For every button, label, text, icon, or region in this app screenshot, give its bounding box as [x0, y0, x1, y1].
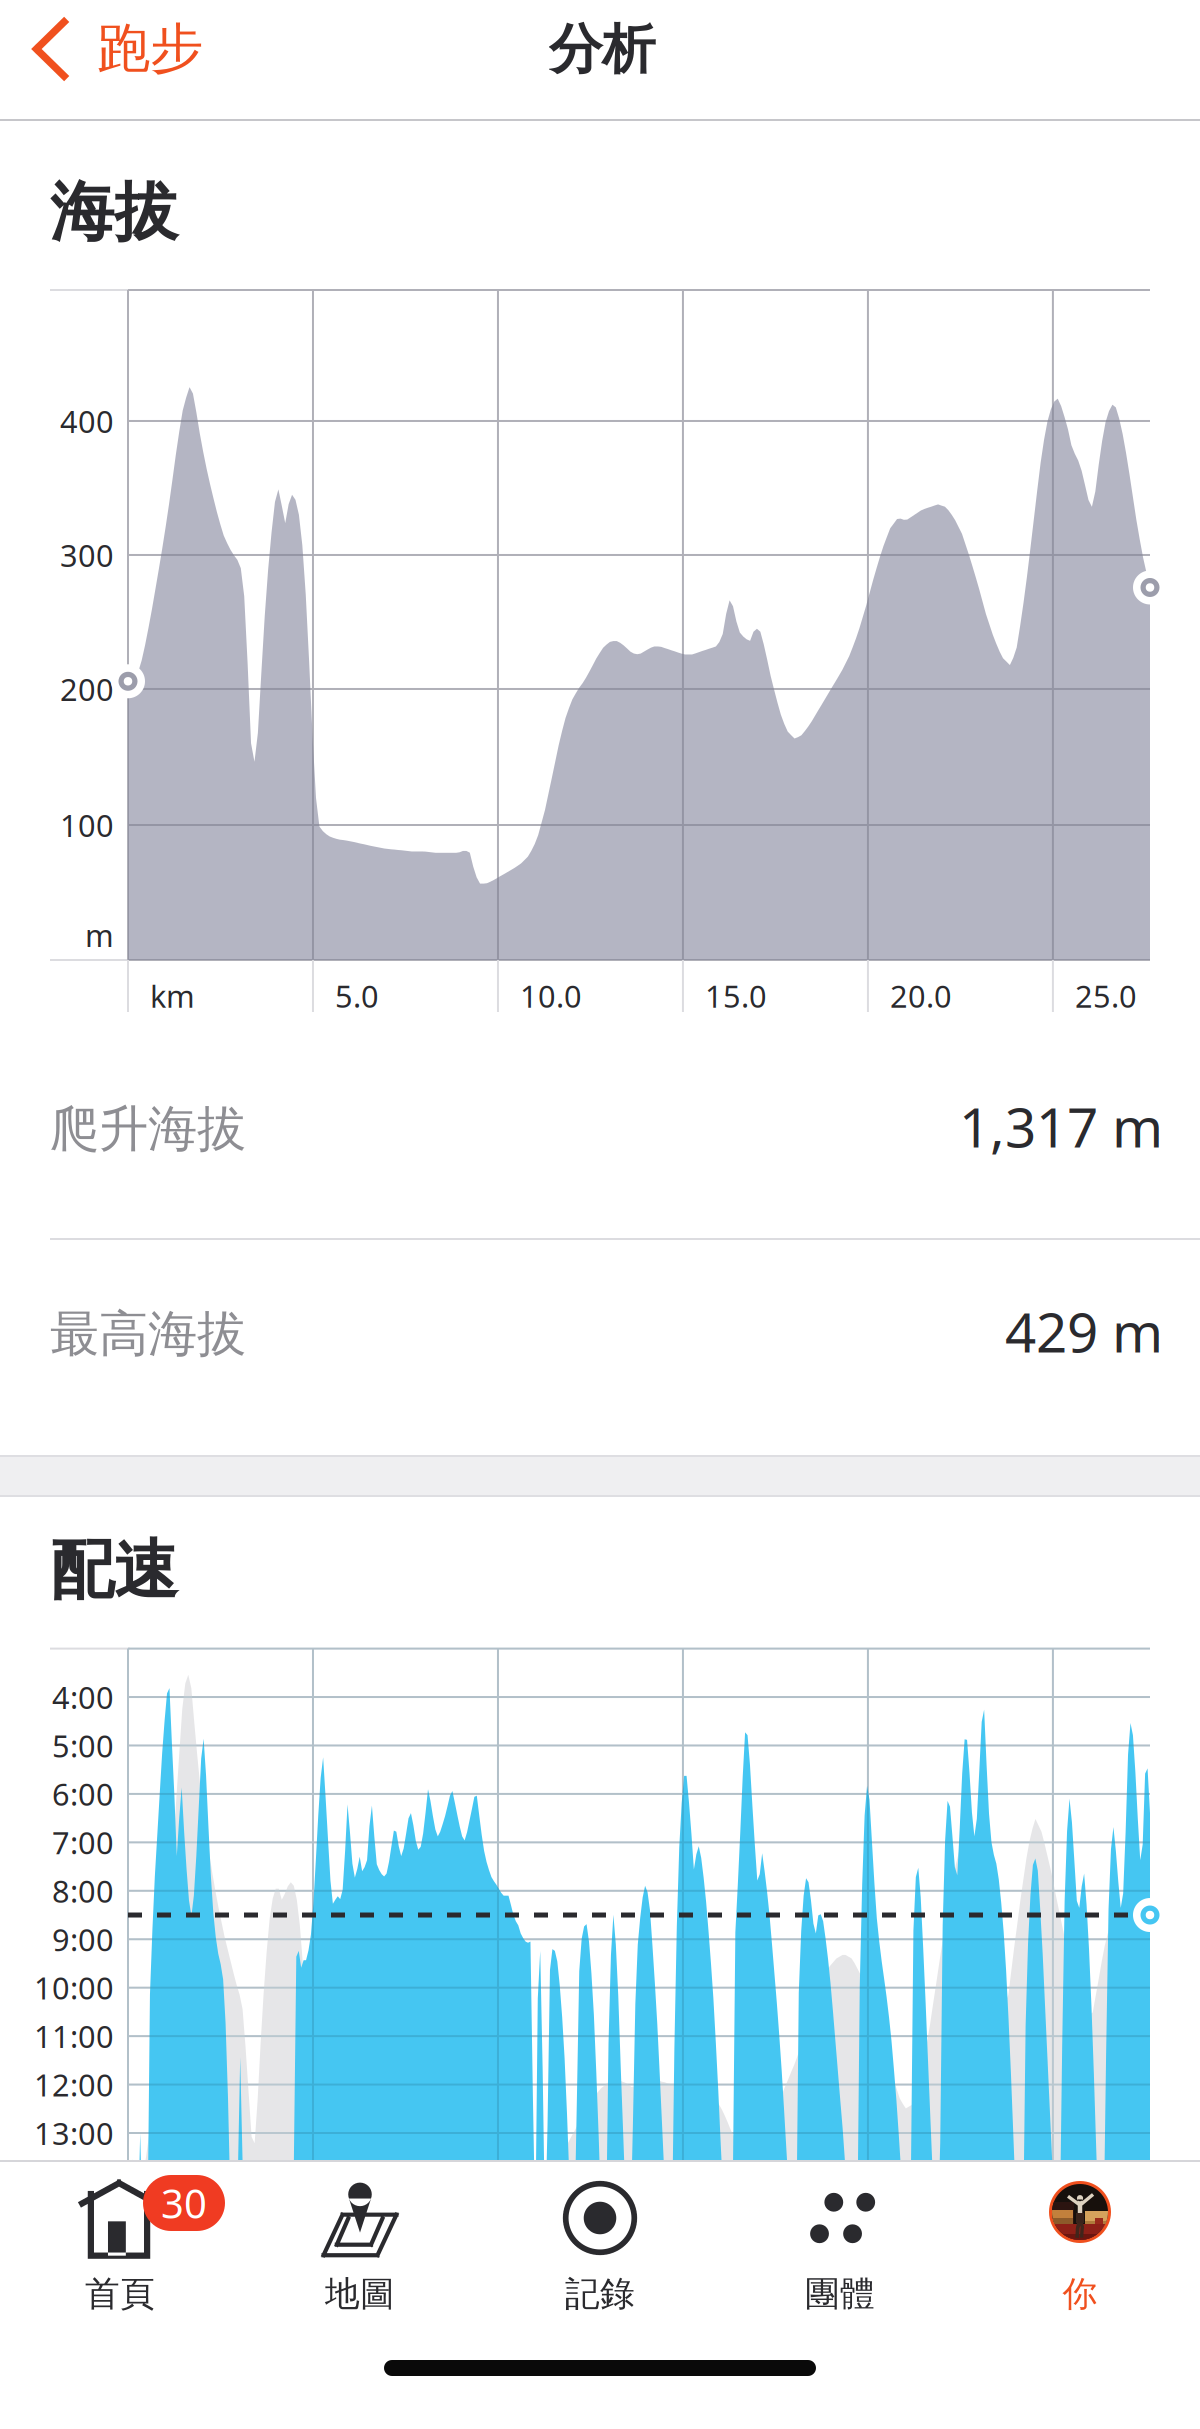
staticText: 30	[161, 2176, 207, 2230]
button[interactable]: 地圖	[240, 2175, 480, 2325]
staticText: 團體	[805, 2272, 875, 2316]
staticText: 5.0	[335, 975, 379, 1017]
staticText: 25.0	[1075, 975, 1137, 1017]
staticText: 分析	[549, 16, 655, 83]
staticText: 300	[60, 534, 114, 576]
button[interactable]: 團體	[720, 2175, 960, 2325]
staticText: 配速	[50, 1530, 178, 1611]
staticText: 11:00	[34, 2015, 114, 2057]
button[interactable]: 你	[960, 2175, 1200, 2325]
staticText: 爬升海拔	[50, 1098, 246, 1160]
staticText: 記錄	[565, 2272, 635, 2316]
staticText: 7:00	[52, 1821, 114, 1863]
staticText: 400	[60, 400, 114, 442]
staticText: 100	[60, 804, 114, 846]
staticText: 12:00	[34, 2064, 114, 2105]
staticText: 地圖	[325, 2272, 395, 2316]
staticText: 首頁	[85, 2272, 155, 2316]
staticText: 1,317 m	[959, 1089, 1163, 1163]
staticText: 海拔	[50, 172, 178, 253]
staticText: 6:00	[52, 1773, 114, 1815]
staticText: 4:00	[52, 1676, 114, 1718]
staticText: 5:00	[52, 1725, 114, 1766]
staticText: 20.0	[890, 975, 952, 1017]
staticText: 15.0	[705, 975, 767, 1017]
staticText: 13:00	[34, 2112, 114, 2154]
staticText: km	[150, 975, 195, 1017]
button[interactable]: 30	[0, 2175, 240, 2325]
staticText: 429 m	[1005, 1294, 1163, 1368]
staticText: 8:00	[52, 1870, 114, 1912]
button[interactable]: 記錄	[480, 2175, 720, 2325]
staticText: 跑步	[97, 15, 203, 82]
button[interactable]: 跑步	[0, 4, 210, 114]
staticText: m	[85, 914, 114, 956]
staticText: 10:00	[34, 1967, 114, 2009]
staticText: 你	[1062, 2272, 1097, 2316]
staticText: 9:00	[52, 1918, 114, 1960]
staticText: 10.0	[520, 975, 582, 1017]
staticText: 200	[60, 668, 114, 710]
staticText: 最高海拔	[50, 1303, 246, 1365]
